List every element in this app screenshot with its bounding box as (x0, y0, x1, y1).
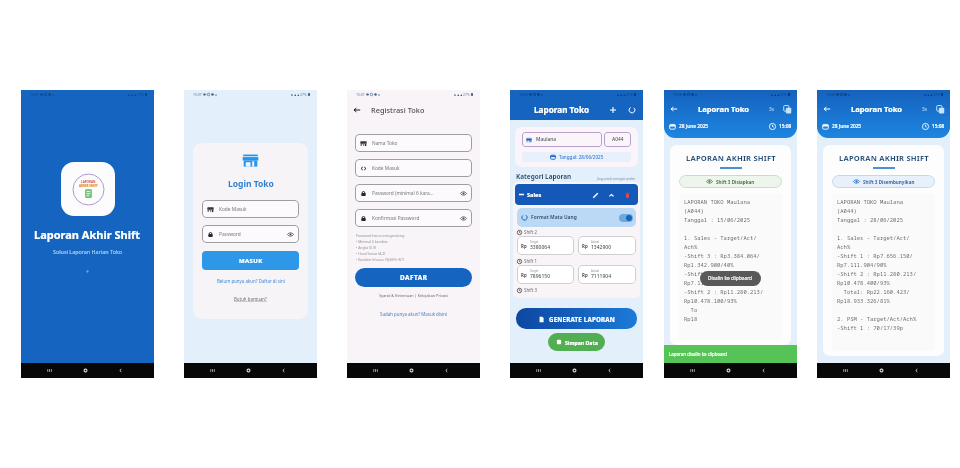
button[interactable]: Copy (934, 103, 946, 115)
staticText: Format Mata Uang (531, 214, 577, 221)
button[interactable]: Kode Masuk (355, 159, 472, 177)
staticText: 15:08 (779, 123, 792, 130)
button[interactable]: Password (202, 225, 299, 243)
staticText: Kode Masuk (219, 206, 247, 213)
button[interactable]: Back (114, 364, 127, 377)
staticText: -Shift 2 : Rp11.280.213/ (837, 270, 917, 277)
button[interactable]: Recents (206, 364, 219, 377)
button[interactable]: Belum punya akun? Daftar di sini (217, 278, 285, 284)
staticText: A044 (612, 136, 624, 143)
button[interactable]: Shift 3 Disembunyikan (832, 175, 935, 188)
button[interactable]: Copy (781, 103, 793, 115)
button[interactable]: Sales (515, 184, 638, 205)
button[interactable]: Recents (686, 364, 699, 377)
button[interactable]: Butuh bantuan? (234, 296, 267, 302)
staticText: DAFTAR (400, 273, 428, 282)
button[interactable]: Back (351, 104, 363, 116)
button[interactable]: GENERATE LAPORAN (516, 308, 637, 329)
staticText: MASUK (239, 257, 263, 265)
button[interactable]: Rp (578, 236, 636, 255)
button[interactable]: Sudah punya akun? Masuk disini (355, 311, 472, 317)
button[interactable]: Home (568, 364, 581, 377)
staticText: 15:08 (673, 92, 682, 97)
staticText: Rp (582, 272, 588, 278)
button[interactable]: Nama Toko (355, 134, 472, 152)
button[interactable]: Back (757, 364, 770, 377)
button[interactable]: Format Mata Uang (517, 208, 636, 227)
staticText: Maulana (536, 136, 556, 143)
staticText: Target (530, 240, 539, 244)
button[interactable]: Back (668, 103, 680, 115)
button[interactable]: Simpan Data (548, 333, 605, 351)
button[interactable]: Refresh (626, 104, 638, 116)
button[interactable]: MASUK (202, 251, 299, 270)
staticText: Target (530, 269, 539, 273)
staticText: Laporan disalin ke clipboard (669, 351, 727, 357)
staticText: 28 June 2025 (832, 123, 862, 130)
button[interactable]: Shift 3 Disiapkan (679, 175, 782, 188)
button[interactable]: Konfirmasi Password (355, 209, 472, 227)
button[interactable]: Kode Masuk (202, 200, 299, 218)
button[interactable]: Home (242, 364, 255, 377)
button[interactable]: Toggle currency format (619, 214, 633, 222)
button[interactable]: Home (79, 364, 92, 377)
button[interactable]: Rp (578, 265, 636, 284)
button[interactable]: Back (440, 364, 453, 377)
staticText: 7896150 (530, 273, 551, 280)
staticText: Registrasi Toko (371, 105, 425, 115)
staticText: Actual (591, 269, 600, 273)
staticText: -Shift 3 : Rp3.384.064/ (684, 252, 760, 259)
staticText: Solusi Laporan Harian Toko (53, 248, 123, 255)
staticText: Rp7.111.904/90% (684, 279, 734, 286)
staticText: (A044) (837, 207, 857, 214)
staticText: • Karakter khusus (!@#$%^&*) (356, 257, 405, 262)
staticText: 15:07 (193, 92, 202, 97)
staticText: Shift 2 (524, 229, 538, 235)
button[interactable]: A044 (604, 132, 631, 147)
button[interactable]: Recents (369, 364, 382, 377)
staticText: 7111904 (591, 273, 612, 280)
button[interactable]: Delete (621, 189, 633, 201)
staticText: 3s (769, 106, 774, 112)
button[interactable]: Maulana (522, 132, 602, 147)
button[interactable]: Back (277, 364, 290, 377)
button[interactable]: Back (603, 364, 616, 377)
staticText: Shift 3 Disiapkan (716, 179, 755, 185)
staticText: 15:08 (932, 123, 945, 130)
button[interactable]: Home (875, 364, 888, 377)
button[interactable]: Collapse (605, 189, 617, 201)
staticText: -Shift 2 : Rp11.280.213/ (684, 288, 764, 295)
staticText: Tanggal : 15/06/2025 (684, 216, 751, 223)
staticText: Rp7.111.904/90% (837, 261, 887, 268)
staticText: AKHIR SHIFT (79, 184, 98, 188)
staticText: Rp18.933.326/81% (837, 297, 890, 304)
staticText: Login Toko (228, 178, 274, 190)
staticText: Laporan Toko (851, 104, 903, 114)
button[interactable]: Recents (43, 364, 56, 377)
button[interactable]: Rp (517, 236, 574, 255)
staticText: Shift 3 Disembunyikan (863, 179, 915, 185)
button[interactable]: Syarat & Ketentuan | Kebijakan Privasi (355, 293, 472, 298)
staticText: Kode Masuk (372, 165, 400, 172)
button[interactable]: Add (607, 104, 619, 116)
button[interactable]: Back (910, 364, 923, 377)
button[interactable]: Tanggal: 28/06/2025 (522, 152, 631, 162)
staticText: Laporan Toko (534, 104, 590, 115)
staticText: Sales (527, 191, 542, 199)
button[interactable]: Recents (532, 364, 545, 377)
button[interactable]: Edit (589, 189, 601, 201)
button[interactable]: Home (405, 364, 418, 377)
button[interactable]: Password (minimal 6 kara... (355, 184, 472, 202)
button[interactable]: Back (821, 103, 833, 115)
staticText: • Huruf besar (A-Z) (356, 251, 386, 256)
staticText: 27% (780, 92, 787, 97)
staticText: • Minimal 6 karakter (356, 239, 389, 244)
button[interactable]: Rp (517, 265, 574, 284)
button[interactable]: Recents (839, 364, 852, 377)
staticText: Konfirmasi Password (372, 215, 420, 222)
button[interactable]: DAFTAR (355, 268, 472, 287)
button[interactable]: Home (722, 364, 735, 377)
staticText: GENERATE LAPORAN (549, 315, 616, 323)
staticText: Simpan Data (565, 339, 598, 346)
staticText: 1. Sales - Target/Act/ (837, 234, 910, 241)
